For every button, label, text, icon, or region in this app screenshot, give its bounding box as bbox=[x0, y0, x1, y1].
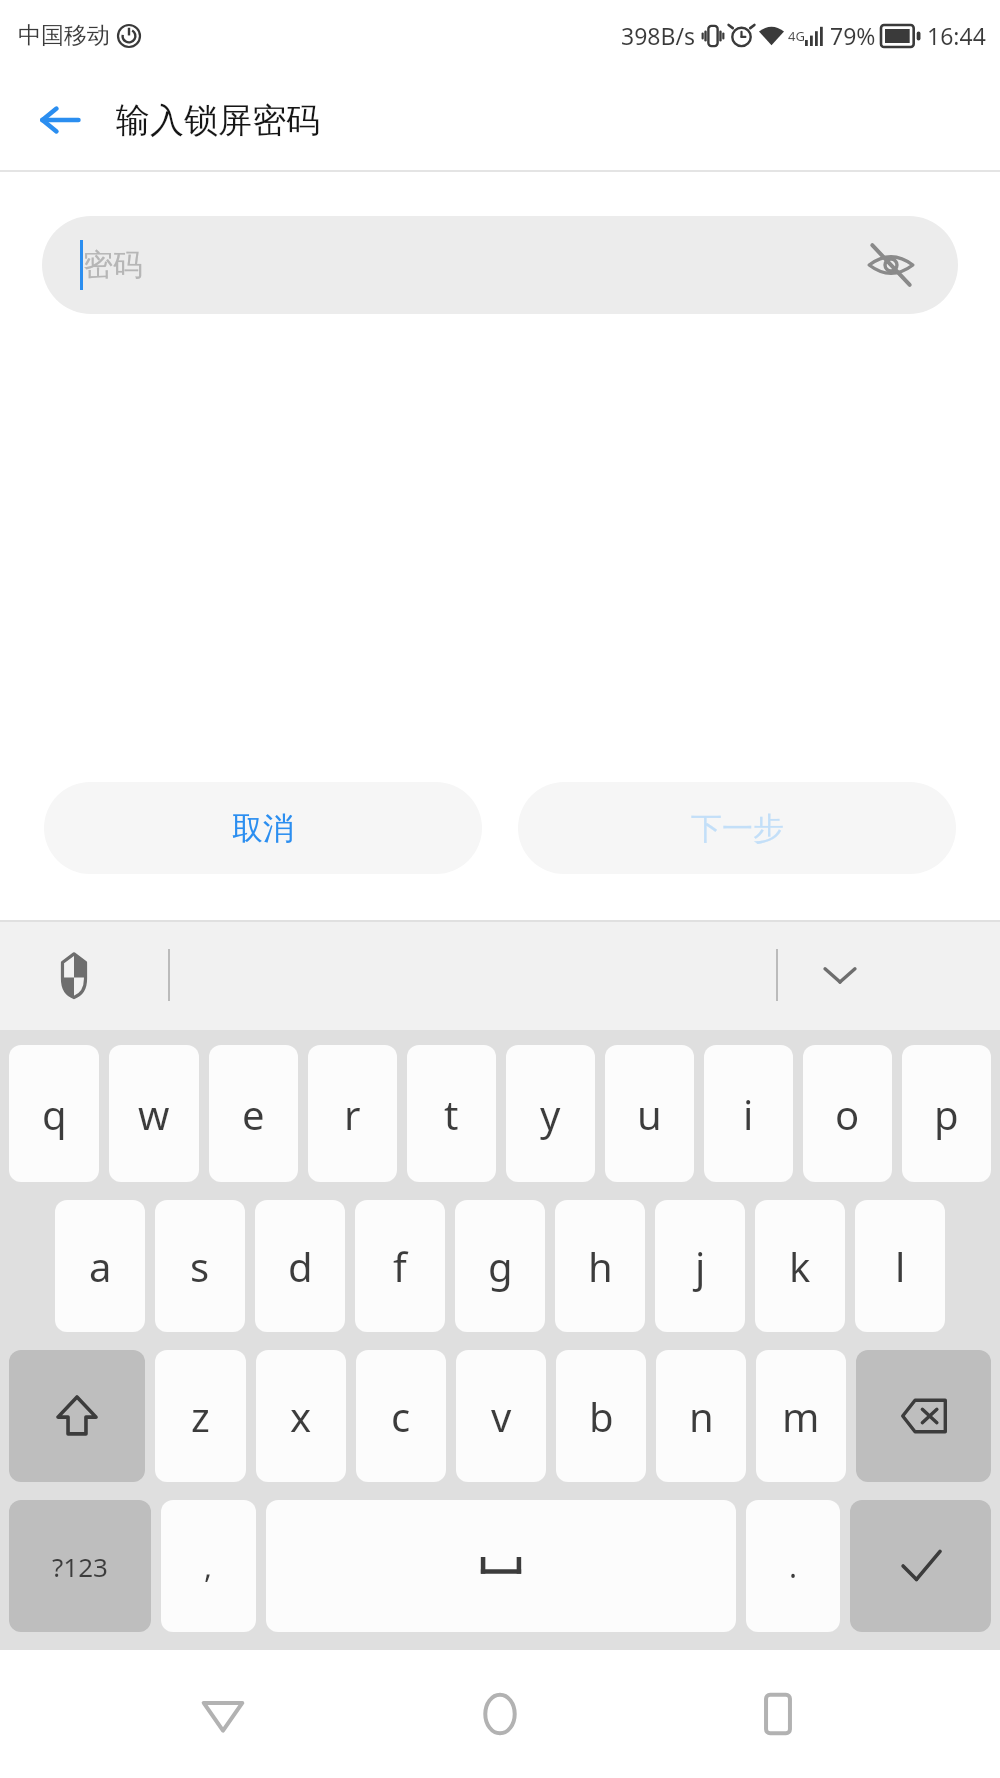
staticText: y bbox=[540, 1087, 561, 1141]
button[interactable]: 下一步 bbox=[518, 782, 956, 874]
staticText: h bbox=[588, 1239, 613, 1293]
button[interactable]: 取消 bbox=[44, 782, 482, 874]
button[interactable]: Recents bbox=[723, 1659, 833, 1769]
button[interactable]: a bbox=[55, 1200, 145, 1332]
staticText: a bbox=[89, 1239, 112, 1293]
staticText: . bbox=[789, 1546, 798, 1587]
staticText: b bbox=[589, 1389, 614, 1443]
staticText: u bbox=[637, 1087, 662, 1141]
staticText: j bbox=[695, 1239, 706, 1293]
button[interactable]: w bbox=[109, 1045, 199, 1182]
button[interactable]: d bbox=[255, 1200, 345, 1332]
button[interactable]: . bbox=[746, 1500, 840, 1632]
staticText: n bbox=[689, 1389, 714, 1443]
button[interactable]: c bbox=[356, 1350, 446, 1482]
button[interactable]: Hide keyboard bbox=[810, 945, 870, 1005]
button[interactable]: Security bbox=[44, 945, 104, 1005]
button[interactable]: r bbox=[308, 1045, 397, 1182]
staticText: 中国移动 bbox=[18, 21, 110, 50]
button[interactable]: t bbox=[407, 1045, 496, 1182]
button[interactable]: Back bbox=[168, 1659, 278, 1769]
staticText: l bbox=[895, 1239, 906, 1293]
staticText: q bbox=[42, 1087, 67, 1141]
button[interactable]: ?123 bbox=[9, 1500, 151, 1632]
staticText: w bbox=[138, 1087, 170, 1141]
staticText: p bbox=[934, 1087, 959, 1141]
button[interactable]: f bbox=[355, 1200, 445, 1332]
button[interactable]: s bbox=[155, 1200, 245, 1332]
staticText: o bbox=[835, 1087, 860, 1141]
staticText: c bbox=[391, 1389, 411, 1443]
button[interactable]: Home bbox=[445, 1659, 555, 1769]
staticText: g bbox=[488, 1239, 513, 1293]
button[interactable]: Shift bbox=[9, 1350, 145, 1482]
button[interactable]: e bbox=[209, 1045, 298, 1182]
staticText: i bbox=[743, 1087, 754, 1141]
button[interactable]: g bbox=[455, 1200, 545, 1332]
button[interactable]: u bbox=[605, 1045, 694, 1182]
button[interactable]: j bbox=[655, 1200, 745, 1332]
staticText: 取消 bbox=[232, 809, 294, 848]
button[interactable]: q bbox=[9, 1045, 99, 1182]
staticText: k bbox=[789, 1239, 811, 1293]
staticText: 密码 bbox=[83, 246, 143, 284]
staticText: s bbox=[190, 1239, 210, 1293]
staticText: r bbox=[344, 1087, 361, 1141]
staticText: d bbox=[288, 1239, 313, 1293]
staticText: e bbox=[242, 1087, 265, 1141]
button[interactable]: , bbox=[161, 1500, 256, 1632]
button[interactable]: y bbox=[506, 1045, 595, 1182]
staticText: ?123 bbox=[52, 1549, 108, 1584]
button[interactable]: o bbox=[803, 1045, 892, 1182]
staticText: m bbox=[782, 1389, 820, 1443]
button[interactable]: k bbox=[755, 1200, 845, 1332]
button[interactable]: m bbox=[756, 1350, 846, 1482]
staticText: z bbox=[191, 1389, 210, 1443]
button[interactable]: Back bbox=[30, 90, 90, 150]
staticText: f bbox=[393, 1239, 407, 1293]
button[interactable]: h bbox=[555, 1200, 645, 1332]
staticText: 79% bbox=[830, 20, 876, 51]
staticText: v bbox=[491, 1389, 512, 1443]
staticText: 4G bbox=[788, 27, 805, 45]
button[interactable]: n bbox=[656, 1350, 746, 1482]
staticText: 16:44 bbox=[927, 20, 986, 51]
staticText: 398B/s bbox=[621, 20, 695, 51]
button[interactable]: Space bbox=[266, 1500, 736, 1632]
button[interactable]: Backspace bbox=[856, 1350, 991, 1482]
button[interactable]: p bbox=[902, 1045, 991, 1182]
button[interactable]: i bbox=[704, 1045, 793, 1182]
button[interactable]: b bbox=[556, 1350, 646, 1482]
button[interactable]: 密码 bbox=[42, 216, 958, 314]
staticText: , bbox=[204, 1546, 213, 1587]
staticText: 下一步 bbox=[691, 809, 784, 848]
staticText: 输入锁屏密码 bbox=[116, 99, 320, 142]
staticText: x bbox=[290, 1389, 312, 1443]
button[interactable]: Enter bbox=[850, 1500, 991, 1632]
button[interactable]: l bbox=[855, 1200, 945, 1332]
button[interactable]: Show password bbox=[860, 234, 922, 296]
button[interactable]: z bbox=[155, 1350, 246, 1482]
button[interactable]: x bbox=[256, 1350, 346, 1482]
button[interactable]: v bbox=[456, 1350, 546, 1482]
staticText: t bbox=[444, 1087, 459, 1141]
